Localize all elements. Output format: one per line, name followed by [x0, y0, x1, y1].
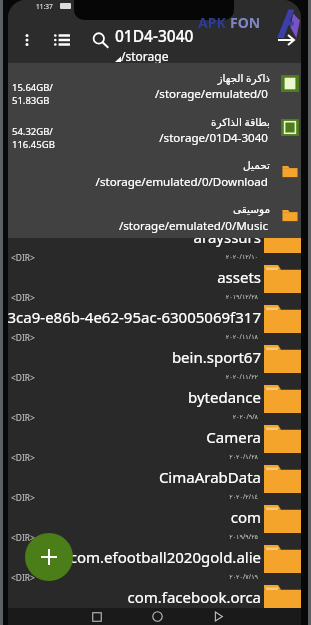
staticText: arayssurs — [193, 227, 261, 247]
staticText: ٢٠٢٠/٢/١٤ — [229, 492, 258, 501]
staticText: 11:37 — [36, 2, 53, 11]
staticText: <DIR> — [11, 412, 35, 423]
staticText: /storage/emulated/0 — [155, 86, 268, 102]
staticText: 01D4-3040 — [115, 25, 194, 46]
button[interactable]: <DIR> — [8, 345, 301, 385]
button[interactable]: <DIR> — [8, 305, 301, 345]
button[interactable]: Search — [84, 24, 116, 56]
button[interactable]: Recents — [91, 611, 103, 623]
button[interactable]: View mode — [46, 24, 78, 56]
button[interactable]: موسيقى — [8, 195, 301, 238]
staticText: Camera — [206, 427, 261, 447]
staticText: APK — [198, 13, 226, 32]
staticText: /storage — [121, 48, 169, 64]
button[interactable]: Forward — [270, 24, 301, 56]
button[interactable]: <DIR> — [8, 585, 301, 625]
staticText: <DIR> — [11, 332, 35, 343]
staticText: 116.45GB — [12, 138, 55, 151]
staticText: بطاقة الذاكرة — [211, 115, 270, 129]
button[interactable]: <DIR> — [8, 465, 301, 505]
staticText: <DIR> — [11, 452, 35, 463]
staticText: ٢٠٢٠/١٢/١٠ — [225, 252, 258, 261]
button[interactable]: 54.32GB/ — [8, 107, 301, 151]
button[interactable]: Add — [25, 533, 73, 581]
staticText: ٢٠٢٠/١١/١٨ — [225, 332, 258, 341]
staticText: موسيقى — [232, 203, 270, 215]
staticText: bein.sport67 — [171, 347, 261, 367]
staticText: <DIR> — [11, 292, 35, 303]
button[interactable]: <DIR> — [8, 545, 301, 585]
button[interactable]: 15.64GB/ — [8, 63, 301, 107]
staticText: bdb53ca9-e86b-4e62-95ac-63005069f317 — [8, 307, 261, 327]
staticText: <DIR> — [11, 572, 35, 583]
staticText: ذاكرة الجهاز — [217, 71, 270, 85]
staticText: /storage/emulated/0/Download — [95, 174, 268, 190]
staticText: ٢٠٢٠/٩/٨ — [232, 412, 258, 421]
staticText: تحميل — [243, 159, 270, 171]
staticText: com.efootball2020gold.alie — [69, 547, 261, 567]
staticText: 51.83GB — [12, 94, 50, 107]
staticText: /storage/01D4-3040 — [159, 130, 268, 146]
staticText: FON — [230, 13, 261, 32]
staticText: <DIR> — [11, 372, 35, 383]
button[interactable]: <DIR> — [8, 505, 301, 545]
staticText: com.facebook.orca — [127, 587, 261, 607]
button[interactable]: تحميل — [8, 151, 301, 195]
button[interactable]: More options — [11, 24, 43, 56]
button[interactable]: Home — [151, 610, 164, 623]
button[interactable]: <DIR> — [8, 225, 301, 265]
staticText: assets — [217, 267, 261, 287]
staticText: bytedance — [187, 387, 261, 407]
staticText: com — [230, 507, 261, 527]
button[interactable]: Back — [212, 610, 225, 623]
staticText: ٢٠٢٠/١١/٢٢ — [225, 372, 258, 381]
staticText: CimaArabData — [158, 467, 261, 487]
staticText: /storage/emulated/0/Music — [118, 218, 268, 234]
staticText: ٢٠٢٠/٧/١٩ — [229, 572, 258, 581]
staticText: <DIR> — [11, 532, 35, 543]
button[interactable]: <DIR> — [8, 425, 301, 465]
staticText: ٢٠١٩/١٢/٢٨ — [225, 292, 258, 301]
staticText: ٢٠١٩/٩/٢٥ — [229, 532, 258, 541]
button[interactable]: <DIR> — [8, 385, 301, 425]
staticText: <DIR> — [11, 492, 35, 503]
staticText: 15.64GB/ — [12, 81, 53, 94]
staticText: 54.32GB/ — [12, 125, 53, 138]
button[interactable]: <DIR> — [8, 265, 301, 305]
staticText: ٢٠٢٠/١/٢٨ — [229, 452, 258, 461]
staticText: <DIR> — [11, 252, 35, 263]
